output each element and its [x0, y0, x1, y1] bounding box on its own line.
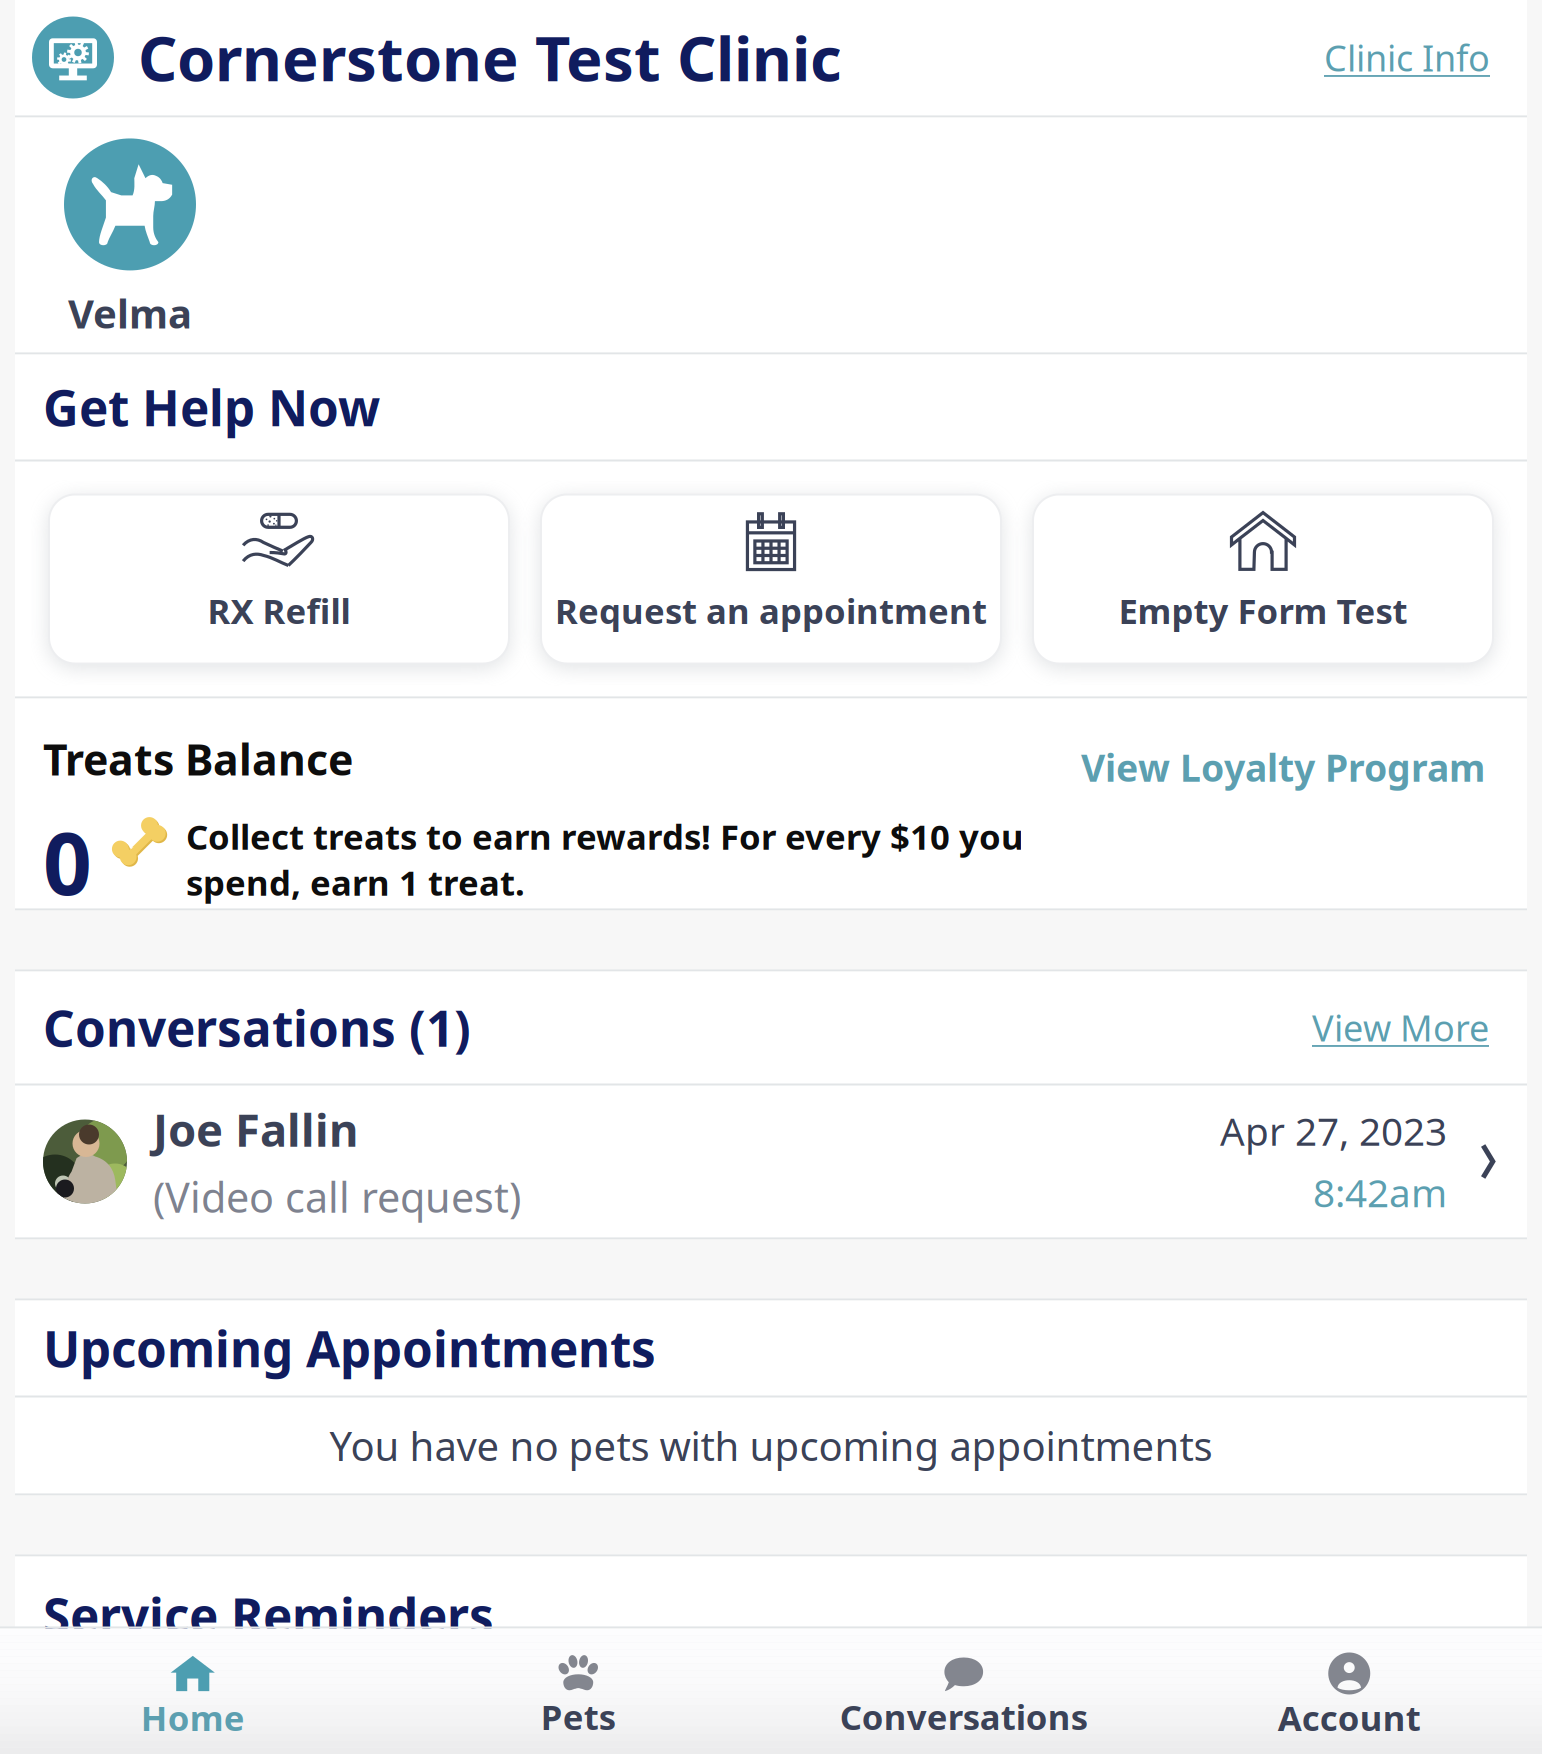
button[interactable]: Request an appointment — [541, 494, 1001, 663]
button[interactable]: View Loyalty Program — [1061, 734, 1499, 800]
staticText: Joe Fallin — [153, 1099, 358, 1159]
staticText: Cornerstone Test Clinic — [138, 17, 842, 98]
button[interactable]: Velma — [44, 116, 216, 353]
staticText: View Loyalty Program — [1081, 742, 1485, 792]
button[interactable]: Home — [0, 1628, 385, 1754]
staticText: Service Reminders — [43, 1582, 494, 1648]
staticText: Conversations — [840, 1693, 1088, 1739]
staticText: (Video call request) — [153, 1169, 521, 1224]
button[interactable]: Joe Fallin — [15, 1085, 1527, 1237]
staticText: Collect treats to earn rewards! For ever… — [186, 813, 1024, 905]
button[interactable]: Clinic Info — [1300, 18, 1510, 97]
staticText: RX Refill — [207, 587, 350, 633]
button[interactable]: Account — [1156, 1628, 1542, 1754]
staticText: Conversations (1) — [43, 995, 471, 1060]
staticText: Upcoming Appointments — [43, 1315, 656, 1381]
staticText: Pets — [541, 1693, 616, 1739]
staticText: 8:42am — [1313, 1166, 1447, 1218]
button[interactable]: Empty Form Test — [1033, 494, 1493, 663]
staticText: View More — [1312, 1004, 1489, 1051]
button[interactable]: View More — [1288, 990, 1499, 1065]
staticText: You have no pets with upcoming appointme… — [329, 1419, 1212, 1472]
staticText: Clinic Info — [1324, 34, 1490, 81]
staticText: Empty Form Test — [1118, 587, 1407, 633]
staticText: Apr 27, 2023 — [1220, 1105, 1447, 1156]
button[interactable]: Pets — [385, 1628, 771, 1754]
button[interactable]: RX Refill — [49, 494, 509, 663]
button[interactable]: Conversations — [771, 1628, 1156, 1754]
staticText: Account — [1278, 1694, 1421, 1740]
staticText: 0 — [43, 805, 92, 918]
staticText: Request an appointment — [555, 587, 987, 633]
staticText: Home — [141, 1694, 245, 1740]
staticText: Velma — [68, 286, 192, 339]
staticText: Treats Balance — [43, 730, 353, 787]
staticText: Get Help Now — [43, 374, 380, 440]
